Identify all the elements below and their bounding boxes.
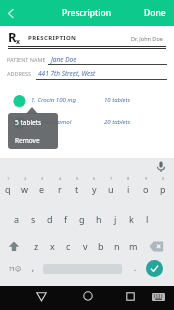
button[interactable]: h xyxy=(91,210,107,228)
staticText: c xyxy=(66,240,71,252)
staticText: PRESCRIPTION xyxy=(28,34,77,42)
button[interactable]: a xyxy=(9,210,25,228)
staticText: j xyxy=(114,213,117,225)
staticText: r xyxy=(58,183,62,195)
staticText: 441 7th Street, West xyxy=(38,69,96,78)
staticText: 5 tablets xyxy=(15,118,42,127)
staticText: . xyxy=(134,262,137,273)
button[interactable]: Done xyxy=(144,7,174,19)
staticText: u xyxy=(108,183,114,195)
button[interactable]: j xyxy=(107,210,123,228)
staticText: v xyxy=(83,240,88,252)
button[interactable] xyxy=(8,241,20,252)
button[interactable]: e xyxy=(34,180,50,198)
staticText: d xyxy=(47,213,53,225)
button[interactable]: u xyxy=(103,180,119,198)
button[interactable]: m xyxy=(125,237,141,255)
staticText: h xyxy=(96,213,102,225)
button[interactable]: w xyxy=(17,180,33,198)
staticText: 3 xyxy=(41,176,44,181)
button[interactable] xyxy=(126,292,135,301)
button[interactable]: s xyxy=(25,210,41,228)
staticText: 20 tablets xyxy=(104,118,131,126)
button[interactable] xyxy=(149,241,165,252)
button[interactable]: n xyxy=(109,237,125,255)
staticText: p xyxy=(160,183,166,195)
staticText: i xyxy=(127,183,130,195)
staticText: ?1☺ xyxy=(9,265,22,273)
staticText: g xyxy=(79,213,85,225)
button[interactable]: l xyxy=(139,210,155,228)
button[interactable]: d xyxy=(42,210,58,228)
staticText: 0 xyxy=(162,176,165,181)
button[interactable] xyxy=(83,291,93,301)
button[interactable]: v xyxy=(77,237,93,255)
button[interactable]: o xyxy=(138,180,154,198)
button[interactable] xyxy=(152,293,165,301)
staticText: l xyxy=(146,213,149,225)
staticText: Done xyxy=(144,7,166,19)
staticText: Jane Doe xyxy=(51,55,77,64)
staticText: x xyxy=(50,240,55,252)
staticText: 2. Paracetamol xyxy=(31,118,72,126)
button[interactable]: z xyxy=(28,237,44,255)
staticText: 2 xyxy=(24,176,27,181)
button[interactable]: i xyxy=(120,180,136,198)
staticText: 1. Crocin 100 mg xyxy=(31,96,77,104)
button[interactable]: c xyxy=(60,237,76,255)
staticText: 10 tablets xyxy=(104,96,131,104)
staticText: w xyxy=(21,183,29,195)
staticText: n xyxy=(114,240,120,252)
button[interactable]: 5 tablets xyxy=(8,113,58,131)
button[interactable] xyxy=(146,260,163,277)
button[interactable] xyxy=(156,161,166,173)
button[interactable]: ?1☺ xyxy=(3,261,27,277)
button[interactable]: r xyxy=(52,180,68,198)
staticText: z xyxy=(34,240,39,252)
button[interactable] xyxy=(36,292,47,302)
staticText: a xyxy=(14,213,20,225)
staticText: 8 xyxy=(127,176,130,181)
button[interactable]: x xyxy=(44,237,60,255)
staticText: Remove xyxy=(15,136,40,145)
button[interactable]: g xyxy=(74,210,90,228)
staticText: b xyxy=(98,240,104,252)
staticText: k xyxy=(129,213,134,225)
button[interactable]: y xyxy=(86,180,102,198)
staticText: o xyxy=(143,183,149,195)
button[interactable]: . xyxy=(130,259,140,275)
button[interactable]: p xyxy=(155,180,171,198)
staticText: s xyxy=(31,213,36,225)
staticText: m xyxy=(129,240,138,252)
button[interactable]: b xyxy=(93,237,109,255)
staticText: 1 xyxy=(7,176,10,181)
button[interactable] xyxy=(2,4,20,22)
staticText: t xyxy=(75,183,79,195)
staticText: q xyxy=(5,183,11,195)
staticText: 7 xyxy=(110,176,113,181)
staticText: PATIENT NAME xyxy=(7,56,46,63)
button[interactable]: , xyxy=(28,259,38,275)
staticText: 6 xyxy=(93,176,96,181)
staticText: , xyxy=(32,262,35,273)
button[interactable]: Remove xyxy=(8,131,58,149)
staticText: Prescription xyxy=(62,7,112,19)
staticText: x xyxy=(16,37,21,47)
staticText: 4 xyxy=(59,176,62,181)
button[interactable]: q xyxy=(0,180,16,198)
button[interactable]: f xyxy=(58,210,74,228)
staticText: Dr. John Doe xyxy=(131,35,163,42)
button[interactable]: t xyxy=(69,180,85,198)
staticText: y xyxy=(92,183,97,195)
staticText: f xyxy=(64,213,68,225)
staticText: ADDRESS xyxy=(7,70,32,77)
staticText: e xyxy=(39,183,45,195)
staticText: 5 xyxy=(76,176,79,181)
staticText: 9 xyxy=(145,176,148,181)
staticText: R xyxy=(8,28,17,46)
button[interactable]: k xyxy=(123,210,139,228)
